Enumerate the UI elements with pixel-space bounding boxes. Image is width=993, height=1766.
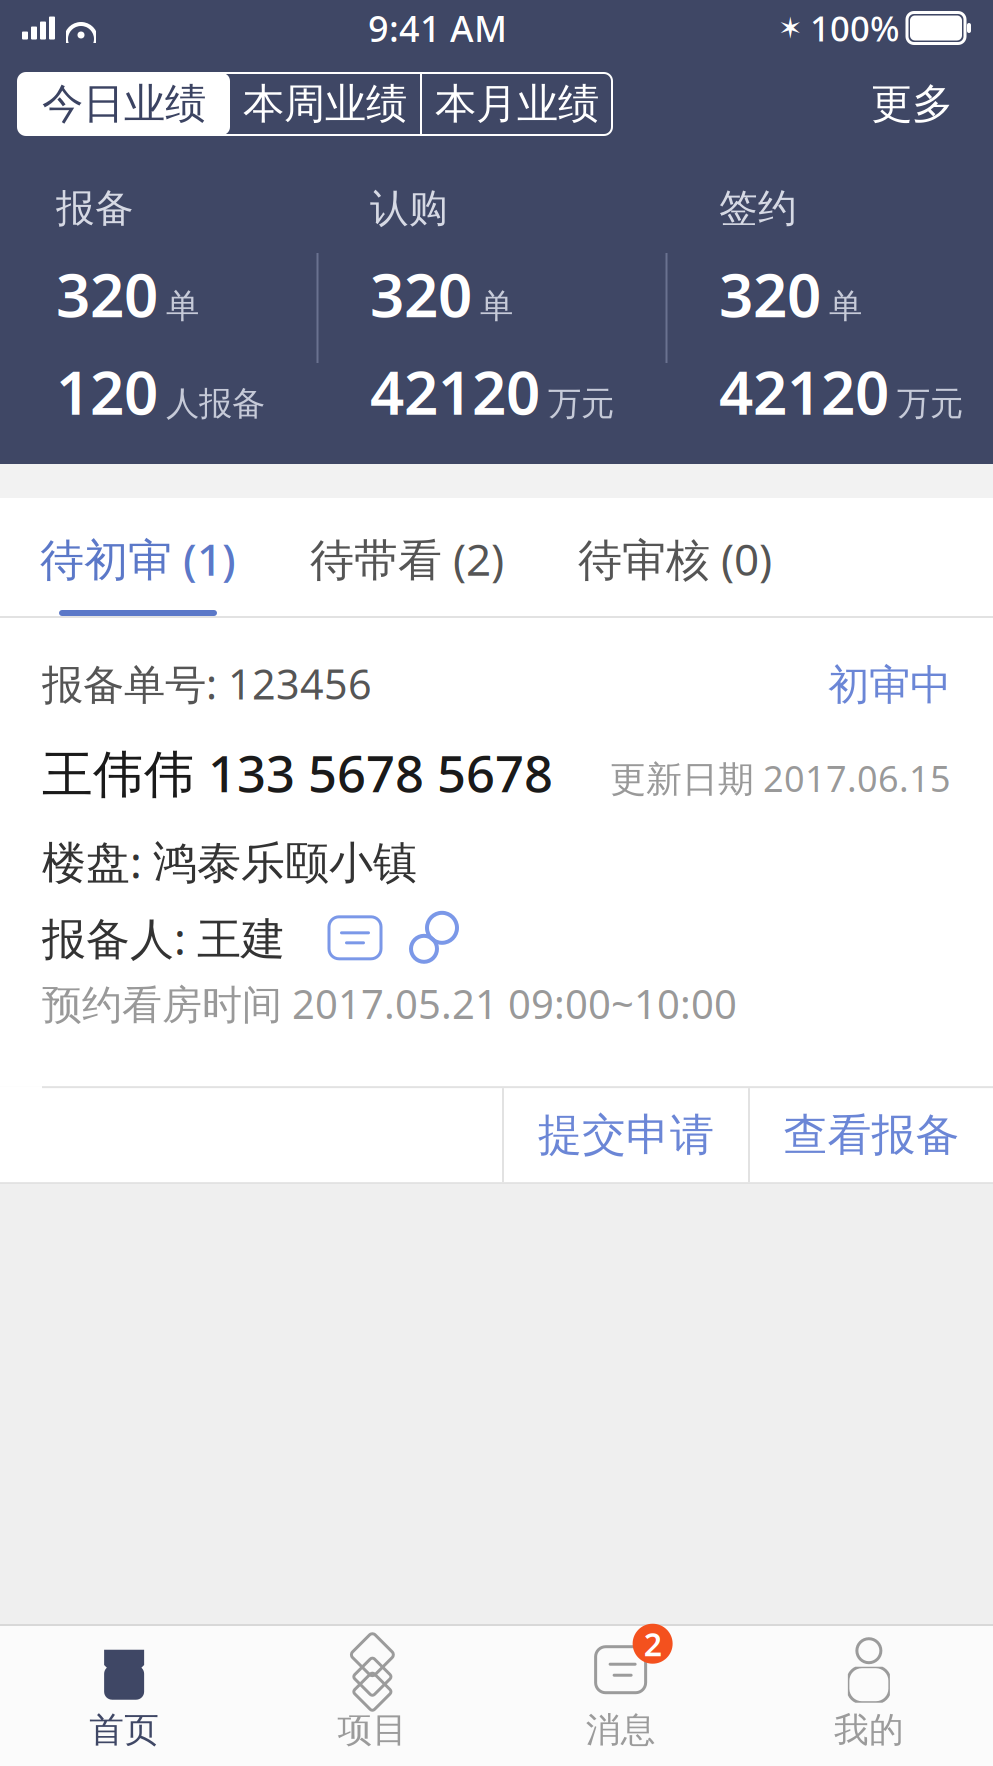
button[interactable]: 我的 [745, 1626, 993, 1766]
button[interactable]: 项目 [248, 1626, 496, 1766]
staticText: 单 [166, 286, 199, 326]
staticText: 320 [56, 254, 158, 334]
staticText: 查看报备 [783, 1108, 959, 1162]
staticText: 待审核 (0) [578, 530, 772, 588]
button[interactable]: 待初审 (1) [40, 498, 236, 616]
button[interactable]: 2 [496, 1626, 745, 1766]
staticText: 单 [480, 286, 513, 326]
staticText: 更多 [871, 79, 953, 129]
staticText: 100% [810, 5, 900, 51]
staticText: 提交申请 [538, 1108, 714, 1162]
staticText: 本周业绩 [243, 79, 407, 129]
staticText: 9:41 AM [368, 4, 507, 52]
button[interactable]: 待审核 (0) [578, 498, 772, 616]
staticText: 更新日期 2017.06.15 [610, 754, 951, 802]
staticText: 楼盘: 鸿泰乐颐小镇 [42, 832, 417, 891]
staticText: 2 [644, 1622, 662, 1665]
button[interactable]: 拨打电话 [405, 910, 461, 966]
staticText: 我的 [834, 1709, 904, 1751]
staticText: 万元 [897, 383, 963, 424]
staticText: 320 [719, 254, 821, 334]
staticText: ✶ [778, 11, 803, 45]
staticText: 认购 [370, 185, 448, 232]
staticText: 报备 [56, 185, 134, 232]
button[interactable]: 本月业绩 [422, 73, 612, 135]
staticText: 320 [370, 254, 472, 334]
staticText: 报备单号: 123456 [42, 656, 372, 711]
button[interactable]: 更多 [857, 73, 967, 135]
button[interactable]: 本周业绩 [230, 73, 420, 135]
staticText: 报备人: 王建 [42, 909, 285, 967]
staticText: 万元 [548, 383, 614, 424]
staticText: 待带看 (2) [310, 530, 504, 588]
staticText: 项目 [337, 1709, 407, 1751]
button[interactable]: 今日业绩 [18, 73, 230, 135]
staticText: 单 [829, 286, 862, 326]
staticText: 王伟伟 133 5678 5678 [42, 739, 553, 806]
staticText: 120 [56, 352, 158, 431]
staticText: 初审中 [828, 660, 951, 711]
button[interactable]: 提交申请 [504, 1088, 748, 1182]
staticText: 42120 [370, 352, 540, 431]
staticText: 今日业绩 [42, 79, 206, 129]
button[interactable]: 查看报备 [750, 1088, 993, 1182]
button[interactable]: 待带看 (2) [310, 498, 504, 616]
button[interactable]: 发送消息 [323, 911, 387, 965]
staticText: 人报备 [166, 383, 265, 424]
staticText: 首页 [89, 1709, 159, 1751]
staticText: 42120 [719, 352, 889, 431]
staticText: 消息 [586, 1709, 656, 1751]
staticText: 待初审 (1) [40, 530, 236, 588]
staticText: 本月业绩 [435, 79, 599, 129]
staticText: 预约看房时间 2017.05.21 09:00~10:00 [42, 977, 737, 1030]
staticText: 签约 [719, 185, 797, 232]
button[interactable]: 首页 [0, 1626, 248, 1766]
